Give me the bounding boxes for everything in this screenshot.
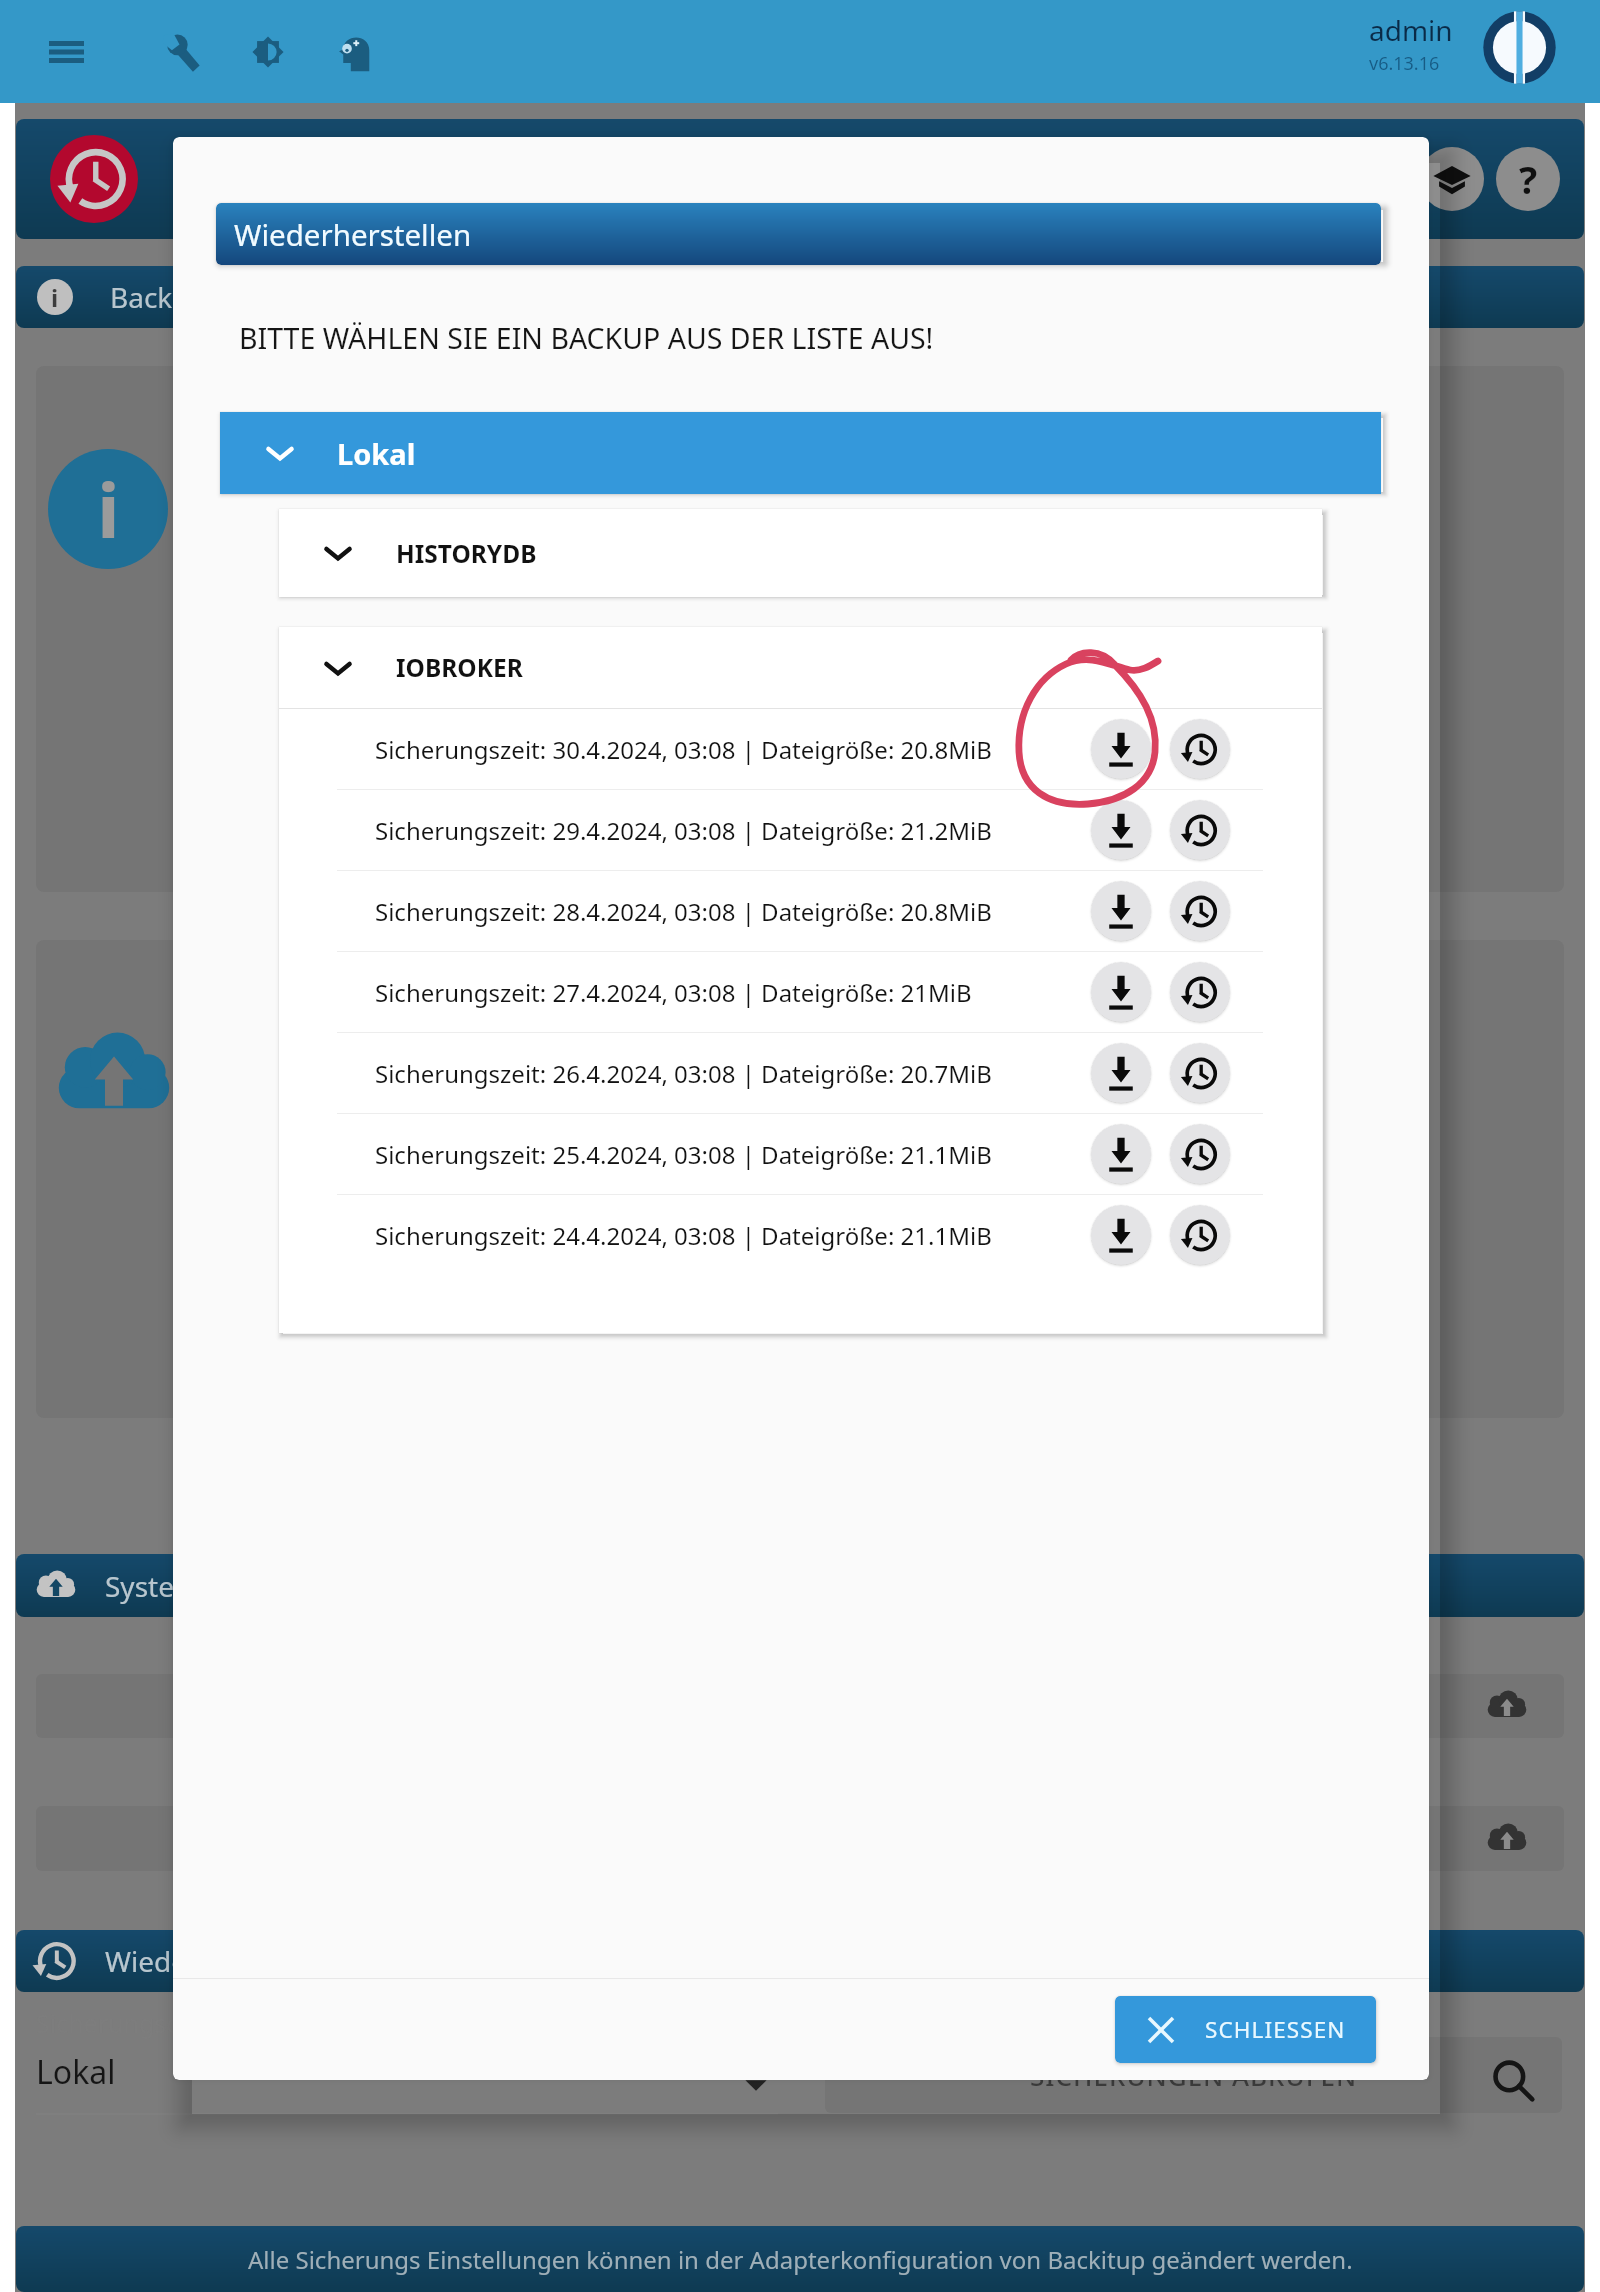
button[interactable]: Download: [1091, 1124, 1151, 1184]
staticText: SICHERUNGEN ABRUFEN: [1030, 2058, 1358, 2093]
button[interactable]: Restore: [1170, 1124, 1230, 1184]
button[interactable]: Restore: [1170, 962, 1230, 1022]
staticText: Sicherungszeit: 28.4.2024, 03:08 | Datei…: [375, 895, 992, 928]
button[interactable]: Tutorial: [1420, 147, 1484, 211]
staticText: IOBROKER: [396, 651, 523, 684]
button[interactable]: [36, 1806, 1564, 1871]
button[interactable]: Sicherungszeit: 27.4.2024, 03:08 | Datei…: [337, 952, 1263, 1032]
button[interactable]: Restore: [1170, 719, 1230, 779]
button[interactable]: Restore: [1170, 881, 1230, 941]
staticText: Sicherungsquelle: [36, 2006, 239, 2040]
button[interactable]: Restore: [1170, 1205, 1230, 1265]
button[interactable]: Sicherungszeit: 24.4.2024, 03:08 | Datei…: [337, 1195, 1263, 1275]
button[interactable]: Restore: [1170, 800, 1230, 860]
button[interactable]: Sicherungszeit: 26.4.2024, 03:08 | Datei…: [337, 1033, 1263, 1113]
staticText: Sicherungszeit: 30.4.2024, 03:08 | Datei…: [375, 733, 992, 766]
staticText: Lokal: [337, 434, 416, 473]
button[interactable]: Search: [1490, 2058, 1536, 2104]
staticText: Lokal: [36, 2050, 116, 2094]
staticText: System: [105, 1567, 201, 1605]
button[interactable]: Download: [1091, 719, 1151, 779]
staticText: Sicherungszeit: 25.4.2024, 03:08 | Datei…: [375, 1138, 992, 1171]
button[interactable]: IOBROKER: [279, 627, 1322, 708]
button[interactable]: Sicherungszeit: 29.4.2024, 03:08 | Datei…: [337, 790, 1263, 870]
staticText: admin: [1369, 11, 1453, 49]
staticText: Sicherungszeit: 27.4.2024, 03:08 | Datei…: [375, 976, 972, 1009]
button[interactable]: Sicherungszeit: 28.4.2024, 03:08 | Datei…: [337, 871, 1263, 951]
button[interactable]: Download: [1091, 1043, 1151, 1103]
button[interactable]: Sicherungszeit: 30.4.2024, 03:08 | Datei…: [337, 709, 1263, 789]
staticText: Sicherungszeit: 24.4.2024, 03:08 | Datei…: [375, 1219, 992, 1252]
button[interactable]: SCHLIESSEN: [1115, 1996, 1376, 2063]
button[interactable]: Download: [1091, 962, 1151, 1022]
button[interactable]: Help: [1496, 147, 1560, 211]
button[interactable]: HISTORYDB: [279, 509, 1322, 597]
staticText: i: [97, 457, 120, 561]
button[interactable]: Expert mode: [322, 19, 387, 84]
button[interactable]: Lokal: [220, 412, 1381, 494]
staticText: Alle Sicherungs Einstellungen können in …: [248, 2243, 1353, 2276]
button[interactable]: Download: [1091, 1205, 1151, 1265]
staticText: Wiederherstellen: [234, 214, 472, 254]
button[interactable]: ioBroker: [1481, 9, 1558, 86]
staticText: HISTORYDB: [396, 537, 537, 570]
button[interactable]: [36, 1674, 1564, 1738]
button[interactable]: Menu: [34, 19, 99, 84]
staticText: BITTE WÄHLEN SIE EIN BACKUP AUS DER LIST…: [239, 319, 934, 358]
staticText: SCHLIESSEN: [1205, 2014, 1346, 2045]
button[interactable]: Download: [1091, 881, 1151, 941]
staticText: Backup: [110, 278, 207, 316]
staticText: Sicherungszeit: 29.4.2024, 03:08 | Datei…: [375, 814, 992, 847]
button[interactable]: Theme: [235, 19, 300, 84]
button[interactable]: Restore: [1170, 1043, 1230, 1103]
staticText: Wiederherstellen: [105, 1942, 331, 1980]
button[interactable]: Download: [1091, 800, 1151, 860]
button[interactable]: Settings: [149, 19, 214, 84]
button[interactable]: SICHERUNGEN ABRUFEN: [825, 2037, 1562, 2113]
button[interactable]: Sicherungszeit: 25.4.2024, 03:08 | Datei…: [337, 1114, 1263, 1194]
staticText: v6.13.16: [1369, 51, 1440, 76]
staticText: Sicherungszeit: 26.4.2024, 03:08 | Datei…: [375, 1057, 992, 1090]
staticText: ?: [1519, 153, 1538, 205]
staticText: i: [51, 281, 59, 314]
